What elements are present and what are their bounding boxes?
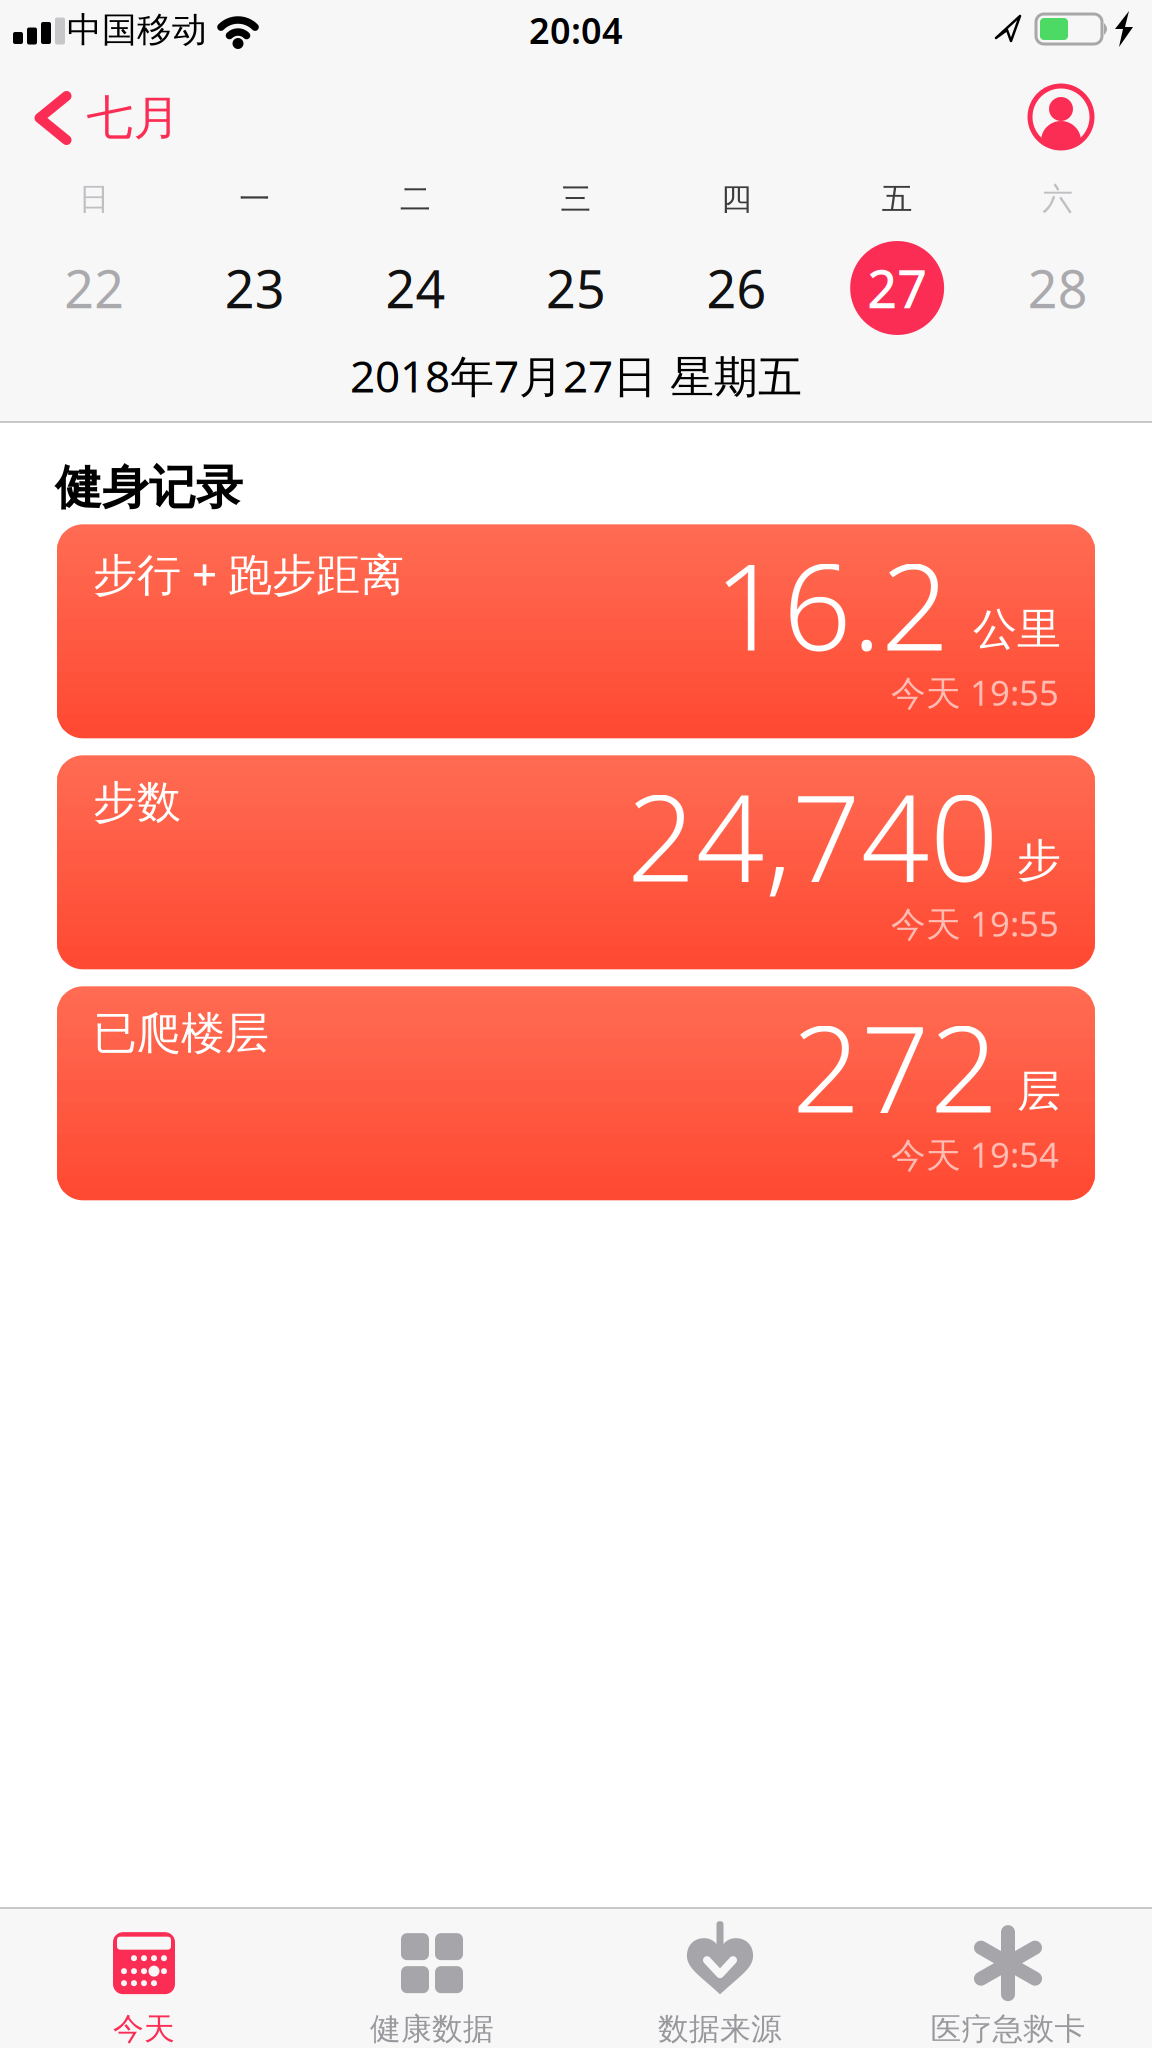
staticText: 今天 19:55 xyxy=(891,669,1059,715)
button[interactable]: 已爬楼层 xyxy=(57,986,1095,1200)
staticText: 中国移动 xyxy=(67,9,207,51)
button[interactable]: 今天 xyxy=(113,1932,175,2048)
button[interactable]: 步数 xyxy=(57,755,1095,969)
staticText: 24 xyxy=(385,253,445,323)
button[interactable]: 24 xyxy=(385,253,445,323)
staticText: 2018年7月27日 星期五 xyxy=(350,346,802,405)
button[interactable]: 25 xyxy=(546,253,606,323)
staticText: 日 xyxy=(79,180,110,218)
staticText: 公里 xyxy=(973,602,1061,656)
staticText: 七月 xyxy=(86,89,180,147)
staticText: 数据来源 xyxy=(658,2010,782,2048)
staticText: 已爬楼层 xyxy=(93,1006,269,1060)
staticText: 20:04 xyxy=(529,6,623,54)
staticText: 26 xyxy=(707,253,767,323)
staticText: 16.2 xyxy=(714,524,950,684)
button[interactable]: 23 xyxy=(225,253,285,323)
button[interactable]: 医疗急救卡 xyxy=(930,1932,1085,2048)
staticText: 今天 xyxy=(113,2010,175,2048)
staticText: 步 xyxy=(1017,833,1061,887)
staticText: 六 xyxy=(1042,180,1073,218)
staticText: 一 xyxy=(239,180,270,218)
staticText: 医疗急救卡 xyxy=(930,2010,1085,2048)
button[interactable] xyxy=(1028,84,1094,150)
staticText: 今天 19:54 xyxy=(891,1131,1059,1177)
staticText: 五 xyxy=(882,180,913,218)
staticText: 健身记录 xyxy=(55,459,243,516)
staticText: 二 xyxy=(400,180,431,218)
button[interactable]: 步行 + 跑步距离 xyxy=(57,524,1095,738)
staticText: 25 xyxy=(546,253,606,323)
staticText: 健康数据 xyxy=(370,2010,494,2048)
button[interactable]: 27 xyxy=(850,241,944,335)
button[interactable]: 26 xyxy=(707,253,767,323)
staticText: 三 xyxy=(560,180,591,218)
button[interactable]: 数据来源 xyxy=(658,1932,782,2048)
button[interactable]: 28 xyxy=(1028,253,1088,323)
staticText: 272 xyxy=(792,986,999,1146)
button[interactable]: 健康数据 xyxy=(370,1932,494,2048)
staticText: 23 xyxy=(225,253,285,323)
staticText: 步数 xyxy=(93,775,181,829)
staticText: 层 xyxy=(1017,1064,1061,1118)
staticText: 27 xyxy=(867,253,927,323)
staticText: 今天 19:55 xyxy=(891,900,1059,946)
staticText: 28 xyxy=(1028,253,1088,323)
button[interactable]: 22 xyxy=(64,253,124,323)
staticText: 步行 + 跑步距离 xyxy=(93,544,404,603)
button[interactable]: 七月 xyxy=(33,89,180,147)
staticText: 24,740 xyxy=(627,755,999,915)
staticText: 四 xyxy=(721,180,752,218)
staticText: 22 xyxy=(64,253,124,323)
